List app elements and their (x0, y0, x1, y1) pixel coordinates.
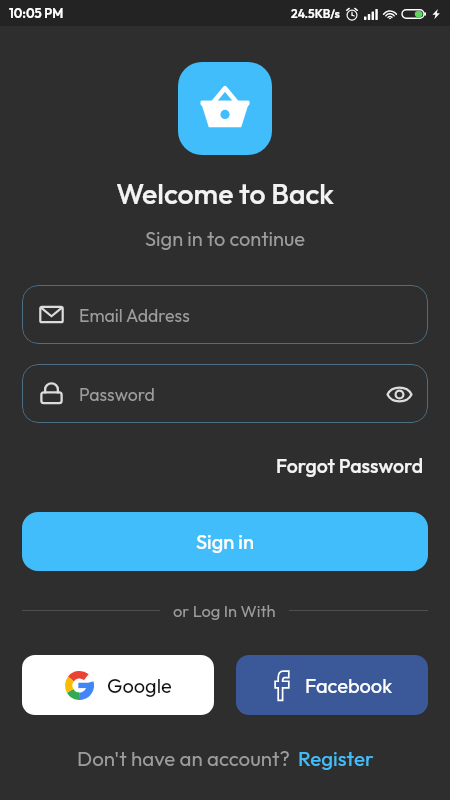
staticText: Register (298, 745, 374, 771)
button[interactable]: Show password (384, 379, 414, 409)
button[interactable]: Register (298, 745, 374, 771)
button[interactable]: Google (22, 655, 214, 715)
staticText: Sign in to continue (0, 226, 450, 251)
button[interactable]: Sign in (22, 512, 428, 571)
staticText: 24.5KB/s (291, 6, 340, 21)
staticText: Google (107, 673, 172, 698)
staticText: Sign in (196, 529, 254, 554)
staticText: Welcome to Back (0, 175, 450, 211)
staticText: Facebook (305, 673, 393, 698)
button[interactable]: Forgot Password (274, 450, 426, 481)
staticText: Email Address (79, 304, 414, 326)
button[interactable]: Facebook (236, 655, 428, 715)
staticText: Don't have an account? (77, 745, 290, 771)
staticText: or Log In With (173, 600, 276, 621)
staticText: Password (79, 383, 384, 405)
staticText: 10:05 PM (9, 5, 64, 21)
button[interactable]: Email Address (22, 285, 428, 344)
staticText: Forgot Password (276, 453, 424, 478)
button[interactable]: Password (22, 364, 428, 423)
